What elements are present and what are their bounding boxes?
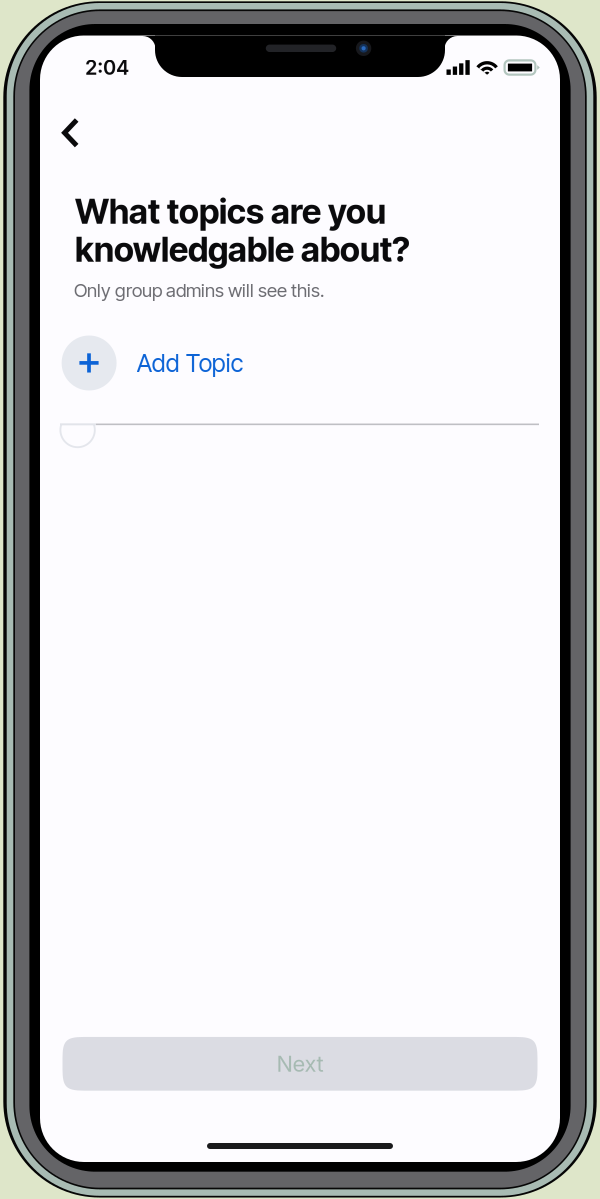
button[interactable]: Back (43, 107, 99, 159)
staticText: Only group admins will see this. (74, 279, 324, 302)
staticText: 2:04 (85, 55, 129, 80)
staticText: knowledgable about? (75, 229, 410, 270)
staticText: What topics are you (75, 191, 386, 232)
button[interactable]: Next (62, 1037, 537, 1091)
button[interactable]: Add Topic (40, 328, 560, 398)
staticText: Add Topic (137, 348, 244, 378)
staticText: Next (276, 1050, 323, 1077)
